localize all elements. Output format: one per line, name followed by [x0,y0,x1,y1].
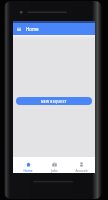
staticText: NEW REQUEST [41,99,67,103]
staticText: Home [26,26,39,32]
button[interactable]: Open navigation menu [15,25,23,33]
button[interactable]: Account [69,158,93,173]
staticText: Jobs [51,169,58,173]
button[interactable]: Home [16,158,40,173]
button[interactable]: Open navigation menu [13,23,95,35]
staticText: Account [75,169,88,173]
staticText: Home [23,169,33,173]
button[interactable]: NEW REQUEST [16,97,92,105]
button[interactable]: Jobs [42,158,66,173]
